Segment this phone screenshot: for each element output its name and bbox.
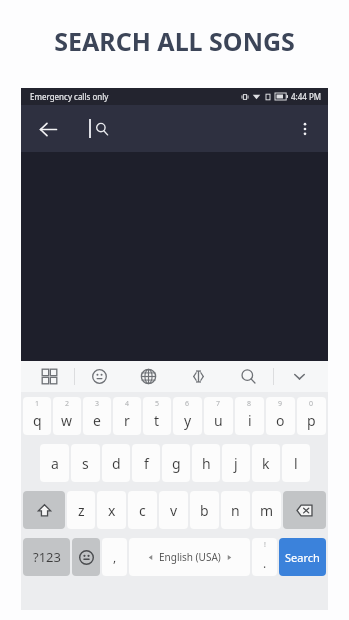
- button[interactable]: Shift: [23, 491, 65, 529]
- staticText: e: [93, 411, 101, 430]
- staticText: 0: [309, 399, 314, 409]
- button[interactable]: Backspace: [283, 491, 326, 529]
- button[interactable]: 5: [143, 397, 171, 435]
- staticText: j: [234, 454, 238, 473]
- button[interactable]: g: [162, 444, 190, 482]
- button[interactable]: Apps: [25, 361, 74, 392]
- staticText: w: [61, 411, 73, 430]
- staticText: Search: [285, 550, 320, 565]
- button[interactable]: 0: [297, 397, 326, 435]
- staticText: 1: [35, 399, 40, 409]
- button[interactable]: 9: [266, 397, 295, 435]
- staticText: d: [112, 454, 121, 473]
- button[interactable]: 1: [23, 397, 51, 435]
- staticText: 5: [155, 399, 160, 409]
- staticText: 4: [125, 399, 130, 409]
- button[interactable]: h: [192, 444, 220, 482]
- staticText: b: [200, 501, 209, 520]
- button[interactable]: 2: [53, 397, 81, 435]
- staticText: English (USA): [159, 550, 221, 564]
- button[interactable]: Language: [124, 361, 173, 392]
- button[interactable]: Collapse: [274, 361, 324, 392]
- staticText: q: [33, 411, 42, 430]
- button[interactable]: More options: [290, 114, 320, 144]
- staticText: p: [307, 411, 316, 430]
- staticText: f: [144, 454, 149, 473]
- staticText: m: [260, 501, 274, 520]
- staticText: ,: [113, 549, 117, 565]
- staticText: r: [124, 411, 130, 430]
- button[interactable]: ?123: [23, 538, 70, 576]
- staticText: k: [262, 454, 270, 473]
- staticText: !: [264, 540, 266, 550]
- staticText: v: [170, 501, 178, 520]
- button[interactable]: Search: [223, 361, 273, 392]
- staticText: g: [172, 454, 181, 473]
- button[interactable]: v: [159, 491, 188, 529]
- staticText: t: [154, 411, 160, 430]
- staticText: y: [184, 411, 192, 430]
- button[interactable]: 3: [83, 397, 111, 435]
- staticText: ?123: [33, 548, 61, 566]
- button[interactable]: n: [221, 491, 250, 529]
- button[interactable]: Back: [31, 112, 65, 146]
- staticText: 2: [65, 399, 70, 409]
- button[interactable]: k: [252, 444, 280, 482]
- staticText: u: [214, 411, 223, 430]
- button[interactable]: d: [102, 444, 130, 482]
- staticText: x: [108, 501, 116, 520]
- staticText: 4:44 PM: [291, 91, 322, 102]
- button[interactable]: 8: [235, 397, 264, 435]
- staticText: 8: [247, 399, 252, 409]
- button[interactable]: c: [128, 491, 157, 529]
- button[interactable]: Text editing: [173, 361, 223, 392]
- button[interactable]: l: [282, 444, 310, 482]
- staticText: i: [248, 411, 252, 430]
- button[interactable]: a: [40, 444, 69, 482]
- button[interactable]: z: [67, 491, 95, 529]
- button[interactable]: Search: [279, 538, 326, 576]
- button[interactable]: s: [71, 444, 100, 482]
- staticText: n: [231, 501, 240, 520]
- button[interactable]: English (USA): [129, 538, 250, 576]
- staticText: h: [202, 454, 211, 473]
- button[interactable]: 6: [173, 397, 202, 435]
- staticText: 3: [95, 399, 100, 409]
- staticText: o: [276, 411, 285, 430]
- button[interactable]: 4: [113, 397, 141, 435]
- staticText: .: [263, 555, 267, 571]
- button[interactable]: ,: [102, 538, 127, 576]
- button[interactable]: m: [252, 491, 281, 529]
- staticText: s: [82, 454, 89, 473]
- staticText: Emergency calls only: [30, 91, 109, 102]
- staticText: 9: [278, 399, 283, 409]
- staticText: SEARCH ALL SONGS: [54, 24, 295, 58]
- button[interactable]: !: [252, 538, 277, 576]
- button[interactable]: j: [222, 444, 250, 482]
- staticText: z: [78, 501, 85, 520]
- staticText: a: [51, 454, 59, 473]
- button[interactable]: f: [132, 444, 160, 482]
- staticText: c: [139, 501, 146, 520]
- button[interactable]: Emoji: [75, 361, 124, 392]
- button[interactable]: 7: [204, 397, 233, 435]
- staticText: l: [294, 454, 298, 473]
- button[interactable]: Emoji: [72, 538, 100, 576]
- staticText: 7: [216, 399, 221, 409]
- button[interactable]: x: [97, 491, 126, 529]
- button[interactable]: b: [190, 491, 219, 529]
- staticText: 6: [185, 399, 190, 409]
